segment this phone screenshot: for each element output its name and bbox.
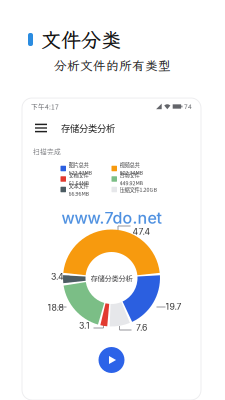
staticText: 下午4:17	[31, 102, 59, 111]
staticText: 存储分类分析	[90, 273, 132, 283]
staticText: 视频总共802.34MB	[119, 161, 143, 176]
staticText: 7.6	[136, 322, 147, 333]
staticText: 74	[184, 102, 192, 111]
staticText: 3.4	[51, 271, 64, 282]
staticText: 文本文件66.96MB	[68, 182, 89, 197]
staticText: www.7do.net	[61, 208, 161, 228]
staticText: 扫描完成	[33, 147, 61, 156]
staticText: 19.7	[165, 301, 181, 312]
staticText: 文件分类	[41, 26, 121, 53]
staticText: 文档文件61.54MB	[68, 171, 89, 187]
staticText: 音频文件449.92MB	[119, 171, 143, 187]
staticText: 分析文件的所有类型	[54, 57, 171, 74]
staticText: 存储分类分析	[61, 121, 115, 135]
staticText: 压缩文件1.20GB	[119, 186, 157, 193]
staticText: 图片总共522.43MB	[68, 161, 92, 176]
staticText: 47.4	[132, 226, 150, 237]
button[interactable]: Menu	[30, 117, 52, 139]
staticText: 3.1	[79, 320, 90, 331]
button[interactable]: Start scan	[93, 342, 129, 378]
staticText: 18.8	[47, 302, 63, 313]
